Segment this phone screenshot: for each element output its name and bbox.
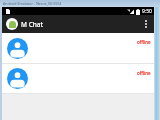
button[interactable]: offline xyxy=(2,33,154,64)
staticText: offline xyxy=(137,70,151,76)
button[interactable]: offline xyxy=(2,64,154,94)
staticText: offline xyxy=(137,39,151,45)
staticText: M Chat xyxy=(21,20,44,29)
staticText: Android Emulator - Nexus_5X:5554 xyxy=(3,1,62,6)
staticText: offline xyxy=(137,70,151,76)
button[interactable]: More options xyxy=(137,15,154,33)
staticText: 9:50 xyxy=(142,8,152,15)
staticText: offline xyxy=(137,39,151,45)
